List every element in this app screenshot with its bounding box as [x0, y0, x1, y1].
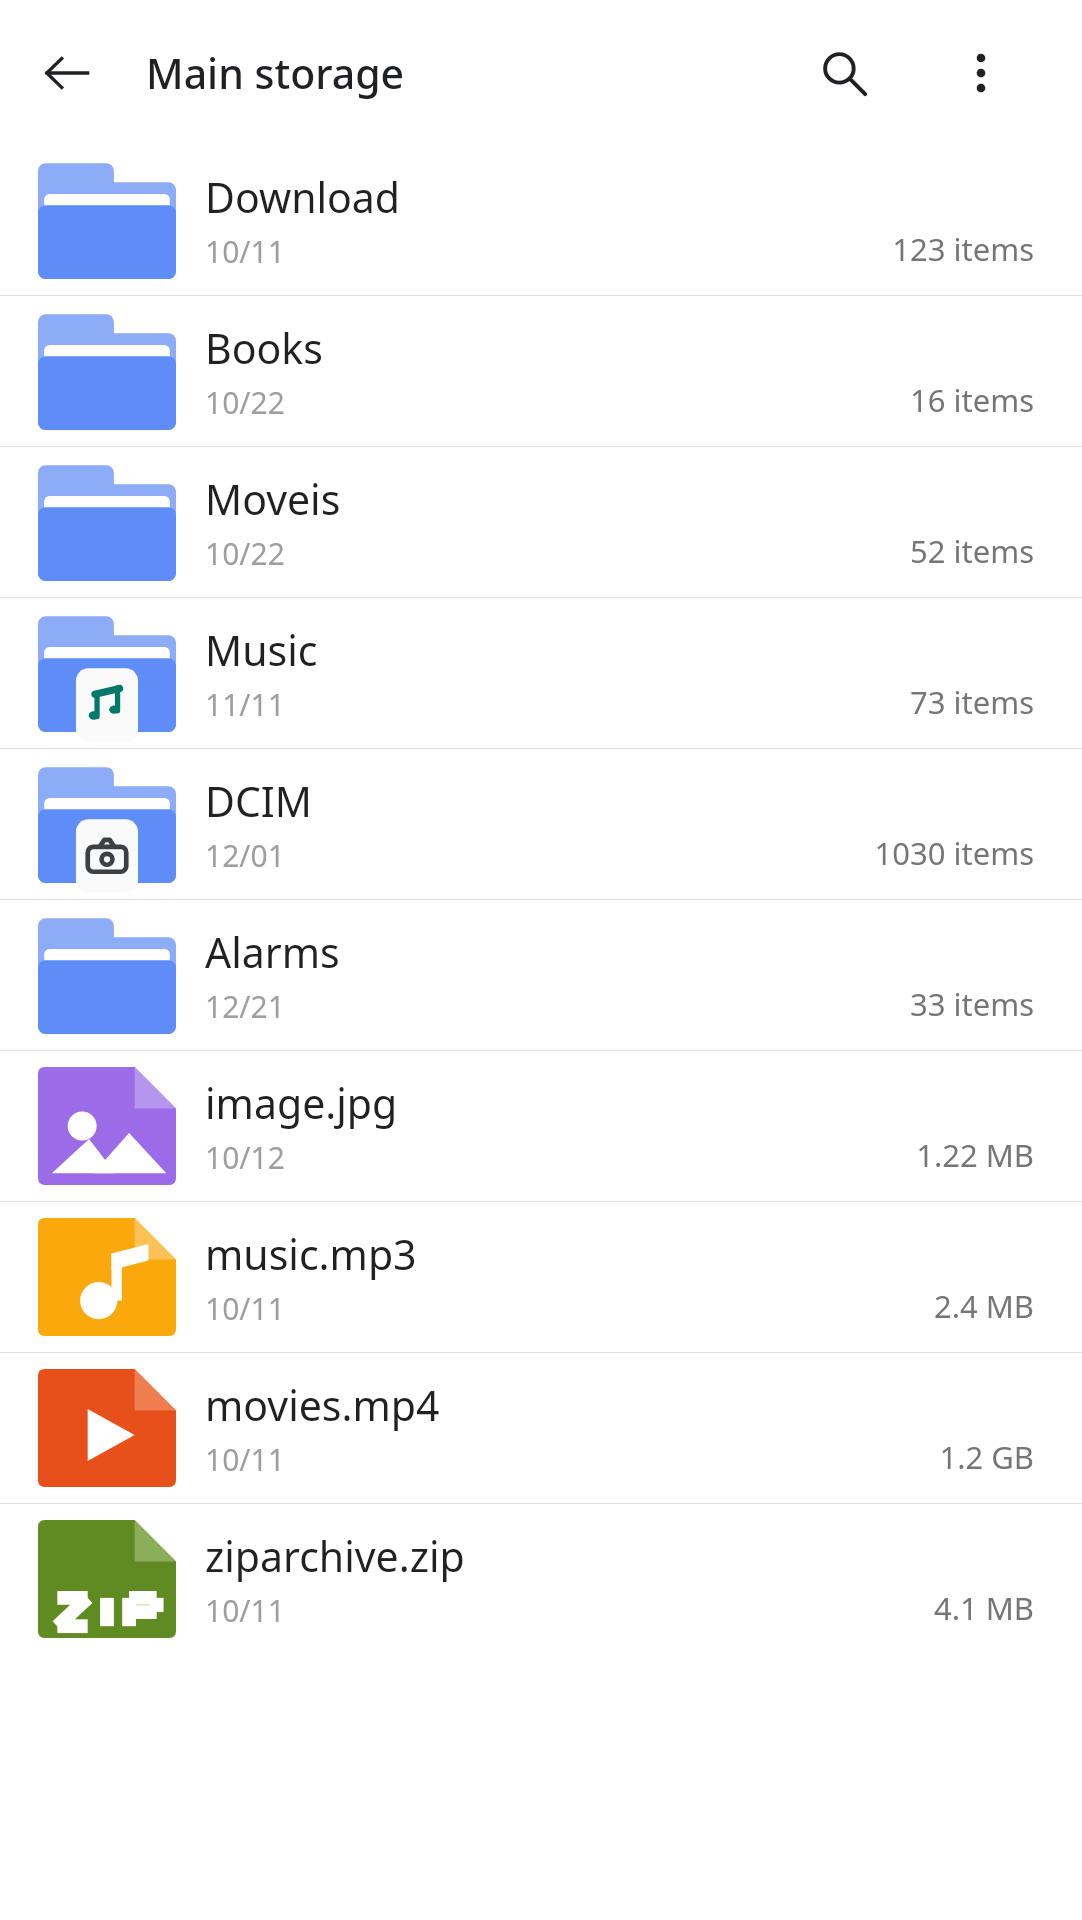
staticText: 11/11: [205, 684, 285, 725]
button[interactable]: Music: [0, 598, 1082, 748]
button[interactable]: music.mp3: [0, 1202, 1082, 1352]
staticText: 10/12: [205, 1137, 285, 1178]
staticText: 10/11: [205, 1439, 285, 1480]
button[interactable]: Alarms: [0, 900, 1082, 1050]
staticText: music.mp3: [205, 1226, 417, 1282]
staticText: 1.2 GB: [939, 1436, 1034, 1478]
staticText: image.jpg: [205, 1075, 398, 1131]
staticText: 10/22: [205, 533, 285, 574]
staticText: 2.4 MB: [933, 1285, 1034, 1327]
staticText: 73 items: [909, 681, 1034, 723]
button[interactable]: image.jpg: [0, 1051, 1082, 1201]
button[interactable]: DCIM: [0, 749, 1082, 899]
staticText: 4.1 MB: [933, 1587, 1034, 1629]
staticText: 12/01: [205, 835, 285, 876]
staticText: Download: [205, 169, 401, 225]
staticText: 1030 items: [874, 832, 1034, 874]
button[interactable]: Download: [0, 145, 1082, 295]
staticText: 1.22 MB: [916, 1134, 1034, 1176]
staticText: 123 items: [892, 228, 1034, 270]
staticText: Music: [205, 622, 318, 678]
button[interactable]: Moveis: [0, 447, 1082, 597]
staticText: 16 items: [909, 379, 1034, 421]
staticText: 33 items: [909, 983, 1034, 1025]
staticText: 52 items: [909, 530, 1034, 572]
button[interactable]: Books: [0, 296, 1082, 446]
button[interactable]: ziparchive.zip: [0, 1504, 1082, 1654]
staticText: Books: [205, 320, 323, 376]
button[interactable]: movies.mp4: [0, 1353, 1082, 1503]
staticText: 10/11: [205, 231, 285, 272]
staticText: ziparchive.zip: [205, 1528, 465, 1584]
staticText: 10/11: [205, 1288, 285, 1329]
staticText: Moveis: [205, 471, 341, 527]
button[interactable]: More options: [938, 30, 1024, 116]
staticText: Main storage: [146, 45, 405, 101]
staticText: Alarms: [205, 924, 340, 980]
staticText: 12/21: [205, 986, 285, 1027]
staticText: DCIM: [205, 773, 312, 829]
staticText: 10/11: [205, 1590, 285, 1631]
button[interactable]: Back: [24, 30, 110, 116]
staticText: movies.mp4: [205, 1377, 440, 1433]
button[interactable]: Search: [798, 27, 890, 119]
staticText: 10/22: [205, 382, 285, 423]
